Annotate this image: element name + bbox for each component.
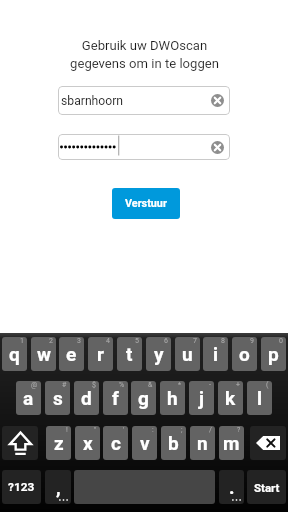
button[interactable]: f (103, 381, 128, 415)
staticText: @ (31, 381, 38, 389)
button[interactable]: i (203, 337, 228, 371)
staticText: ? (237, 426, 241, 434)
button[interactable]: g (131, 381, 156, 415)
staticText: $ (92, 381, 96, 389)
button[interactable]: c (103, 426, 128, 460)
staticText: sbarnhoorn (61, 94, 124, 108)
staticText: x (83, 432, 93, 454)
button[interactable]: l (247, 381, 272, 415)
staticText: s (53, 387, 63, 409)
staticText: c (111, 432, 121, 454)
staticText: " (94, 426, 97, 434)
staticText: ; (181, 426, 183, 434)
button[interactable]: Clear text (58, 134, 230, 160)
button[interactable]: n (190, 426, 215, 460)
staticText: m (223, 432, 240, 454)
staticText: v (140, 432, 150, 454)
staticText: 6 (164, 337, 168, 345)
staticText: z (54, 432, 64, 454)
button[interactable]: u (175, 337, 200, 371)
button[interactable]: z (46, 426, 71, 460)
button[interactable]: y (146, 337, 171, 371)
staticText: - (209, 381, 211, 389)
button[interactable]: Clear text (211, 141, 224, 154)
staticText: # (62, 381, 67, 389)
staticText: h (167, 387, 178, 409)
staticText: j (199, 387, 204, 409)
button[interactable]: j (189, 381, 214, 415)
button[interactable]: b (161, 426, 186, 460)
button[interactable]: m (219, 426, 244, 460)
staticText: y (154, 343, 164, 365)
button[interactable]: Clear text (211, 94, 224, 107)
button[interactable]: Shift (2, 426, 38, 460)
staticText: ?123 (8, 480, 35, 494)
staticText: i (213, 343, 219, 365)
staticText: 9 (250, 337, 254, 345)
button[interactable]: r (88, 337, 113, 371)
staticText: 2 (49, 337, 53, 345)
staticText: ' (123, 426, 125, 434)
staticText: a (23, 387, 34, 409)
staticText: 4 (106, 337, 110, 345)
staticText: k (225, 387, 236, 409)
staticText: 0 (279, 337, 283, 345)
staticText: p (268, 343, 279, 365)
button[interactable]: h (160, 381, 185, 415)
staticText: l (257, 387, 263, 409)
staticText: 1 (20, 337, 24, 345)
button[interactable]: . (219, 470, 244, 504)
button[interactable]: ?123 (2, 470, 41, 504)
staticText: , (56, 476, 61, 498)
staticText: b (168, 432, 179, 454)
staticText: Start (254, 481, 280, 494)
button[interactable]: t (117, 337, 142, 371)
staticText: e (66, 343, 77, 365)
button[interactable]: Start (247, 470, 286, 504)
staticText: r (97, 343, 104, 365)
button[interactable]: s (45, 381, 70, 415)
staticText: q (9, 343, 20, 365)
staticText: Gebruik uw DWOscan gegevens om in te log… (70, 38, 219, 71)
button[interactable]: Verstuur (112, 188, 180, 219)
button[interactable]: x (75, 426, 100, 460)
staticText: n (197, 432, 208, 454)
staticText: & (148, 381, 153, 389)
staticText: ( (266, 381, 269, 389)
button[interactable]: , (45, 470, 71, 504)
staticText: * (178, 381, 182, 389)
button[interactable]: sbarnhoorn (58, 86, 230, 115)
button[interactable]: k (218, 381, 243, 415)
staticText: u (182, 343, 193, 365)
staticText: w (37, 343, 51, 365)
button[interactable]: w (31, 337, 56, 371)
button[interactable]: a (16, 381, 41, 415)
staticText: % (119, 381, 125, 389)
staticText: : (152, 426, 154, 434)
staticText: / (209, 426, 212, 434)
button[interactable]: e (59, 337, 84, 371)
button[interactable]: v (132, 426, 157, 460)
staticText: 8 (221, 337, 225, 345)
staticText: + (236, 381, 240, 389)
staticText: t (126, 343, 133, 365)
staticText: 7 (193, 337, 197, 345)
staticText: 5 (135, 337, 139, 345)
staticText: 3 (77, 337, 81, 345)
staticText: f (112, 387, 119, 409)
staticText: d (81, 387, 92, 409)
button[interactable]: o (232, 337, 257, 371)
button[interactable]: q (2, 337, 27, 371)
staticText: Verstuur (125, 197, 167, 210)
staticText: o (239, 343, 250, 365)
button[interactable]: Backspace (250, 426, 286, 460)
button[interactable]: p (261, 337, 286, 371)
staticText: ! (66, 426, 68, 434)
staticText: g (138, 387, 149, 409)
staticText: . (229, 476, 235, 498)
button[interactable]: d (74, 381, 99, 415)
